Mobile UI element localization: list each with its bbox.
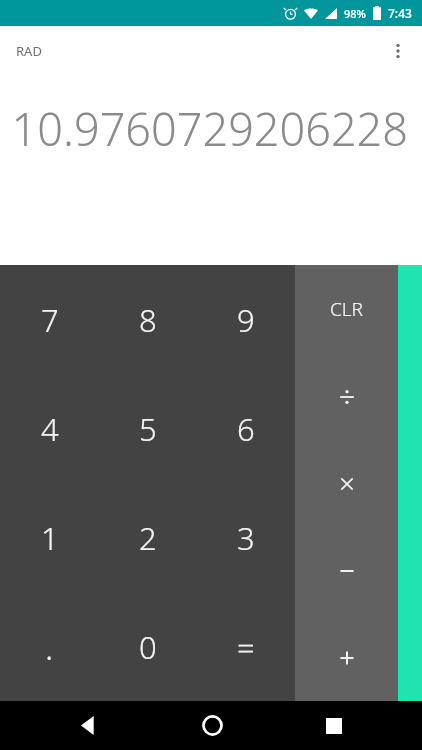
button[interactable]: 3 [197, 483, 295, 592]
button[interactable]: 9 [197, 265, 295, 374]
staticText: . [45, 624, 54, 670]
button[interactable]: Back [47, 701, 132, 750]
staticText: 5 [139, 408, 157, 450]
button[interactable]: 6 [197, 374, 295, 483]
staticText: 9 [237, 299, 255, 341]
staticText: CLR [330, 296, 364, 322]
button[interactable]: = [197, 592, 295, 701]
staticText: 3 [237, 517, 255, 559]
button[interactable]: Divide [295, 353, 398, 440]
staticText: 0 [139, 626, 157, 668]
button[interactable]: 8 [99, 265, 197, 374]
button[interactable]: Multiply [295, 440, 398, 527]
button[interactable]: Add [295, 614, 398, 701]
button[interactable]: Home [170, 701, 254, 750]
button[interactable]: 4 [0, 374, 99, 483]
button[interactable]: 1 [0, 483, 99, 592]
button[interactable]: 5 [99, 374, 197, 483]
staticText: 6 [237, 408, 255, 450]
staticText: 7 [41, 299, 59, 341]
staticText: 2 [139, 517, 157, 559]
staticText: 7:43 [388, 5, 412, 21]
button[interactable]: 7 [0, 265, 99, 374]
staticText: 4 [41, 408, 59, 450]
staticText: 98% [344, 6, 366, 21]
staticText: 10.9760729206228 [11, 98, 408, 159]
staticText: 8 [139, 299, 157, 341]
button[interactable]: Subtract [295, 527, 398, 614]
button[interactable]: 0 [99, 592, 197, 701]
staticText: = [237, 626, 255, 668]
button[interactable]: Recent apps [292, 701, 376, 750]
button[interactable]: 2 [99, 483, 197, 592]
staticText: RAD [16, 42, 42, 60]
button[interactable]: RAD [0, 34, 54, 68]
button[interactable]: More options [374, 27, 422, 75]
button[interactable]: CLR [295, 265, 398, 353]
button[interactable]: . [0, 592, 99, 701]
staticText: 1 [41, 517, 59, 559]
